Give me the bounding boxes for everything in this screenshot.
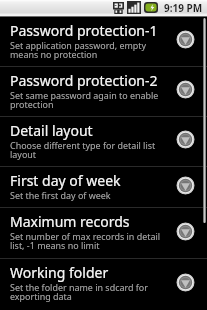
button[interactable]: Open setting xyxy=(176,273,195,292)
button[interactable]: Open setting xyxy=(176,80,195,99)
staticText: Detail layout xyxy=(10,121,93,140)
button[interactable]: Open setting xyxy=(176,30,195,49)
other: 3G network xyxy=(113,2,124,14)
button[interactable]: First day of week xyxy=(0,167,207,207)
staticText: Working folder xyxy=(10,263,109,282)
staticText: Set application password, empty means no… xyxy=(10,39,147,61)
button[interactable]: Open setting xyxy=(176,130,195,149)
button[interactable]: Open setting xyxy=(176,176,195,195)
staticText: Choose different type for detail list la… xyxy=(10,139,156,161)
button[interactable]: Password protection-1 xyxy=(0,17,207,66)
staticText: Set same password again to enable protec… xyxy=(10,89,159,111)
button[interactable]: Maximum records xyxy=(0,208,207,258)
staticText: Set the folder name in sdcard for export… xyxy=(10,281,148,303)
button[interactable]: Working folder xyxy=(0,259,207,310)
staticText: Maximum records xyxy=(10,212,130,231)
staticText: Set the first day of week xyxy=(10,189,111,201)
staticText: Set number of max records in detail list… xyxy=(10,230,161,252)
staticText: Password protection-1 xyxy=(10,21,158,40)
button[interactable]: Password protection-2 xyxy=(0,67,207,116)
staticText: Password protection-2 xyxy=(10,71,158,90)
other: Battery charging xyxy=(144,2,158,13)
other: Signal strength xyxy=(127,1,141,14)
staticText: 9:19 PM xyxy=(164,1,203,15)
staticText: First day of week xyxy=(10,171,121,190)
button[interactable]: Detail layout xyxy=(0,117,207,166)
button[interactable]: Open setting xyxy=(176,222,195,241)
